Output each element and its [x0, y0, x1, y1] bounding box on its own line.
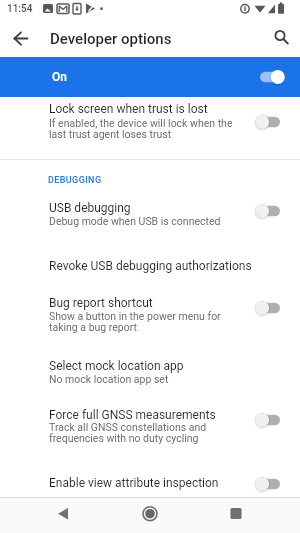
- staticText: Select mock location app: [49, 359, 184, 373]
- staticText: If enabled, the device will lock when th…: [49, 117, 233, 141]
- staticText: Developer options: [50, 30, 172, 48]
- staticText: Bug report shortcut: [49, 296, 153, 310]
- staticText: Debug mode when USB is connected: [49, 215, 221, 227]
- button[interactable]: Select mock location app: [0, 346, 300, 400]
- button[interactable]: [268, 23, 296, 51]
- staticText: No mock location app set: [49, 373, 169, 385]
- button[interactable]: USB debugging: [0, 190, 300, 246]
- staticText: Show a button in the power menu for taki…: [49, 310, 221, 334]
- button[interactable]: [220, 498, 252, 533]
- staticText: Revoke USB debugging authorizations: [49, 259, 252, 273]
- staticText: 11:54: [7, 3, 33, 15]
- button[interactable]: Force full GNSS measurements: [0, 400, 300, 460]
- button[interactable]: [134, 498, 166, 533]
- button[interactable]: [6, 23, 34, 51]
- button[interactable]: Lock screen when trust is lost: [0, 97, 300, 159]
- button[interactable]: Enable view attribute inspection: [0, 460, 300, 497]
- button[interactable]: On: [0, 57, 300, 97]
- staticText: Enable view attribute inspection: [49, 476, 219, 490]
- staticText: Lock screen when trust is lost: [49, 102, 208, 116]
- staticText: Force full GNSS measurements: [49, 408, 216, 422]
- staticText: USB debugging: [49, 201, 131, 215]
- staticText: On: [52, 70, 67, 84]
- button[interactable]: Revoke USB debugging authorizations: [0, 246, 300, 288]
- staticText: DEBUGGING: [48, 175, 102, 186]
- button[interactable]: [48, 498, 80, 533]
- button[interactable]: Bug report shortcut: [0, 288, 300, 346]
- staticText: Track all GNSS constellations and freque…: [49, 421, 207, 445]
